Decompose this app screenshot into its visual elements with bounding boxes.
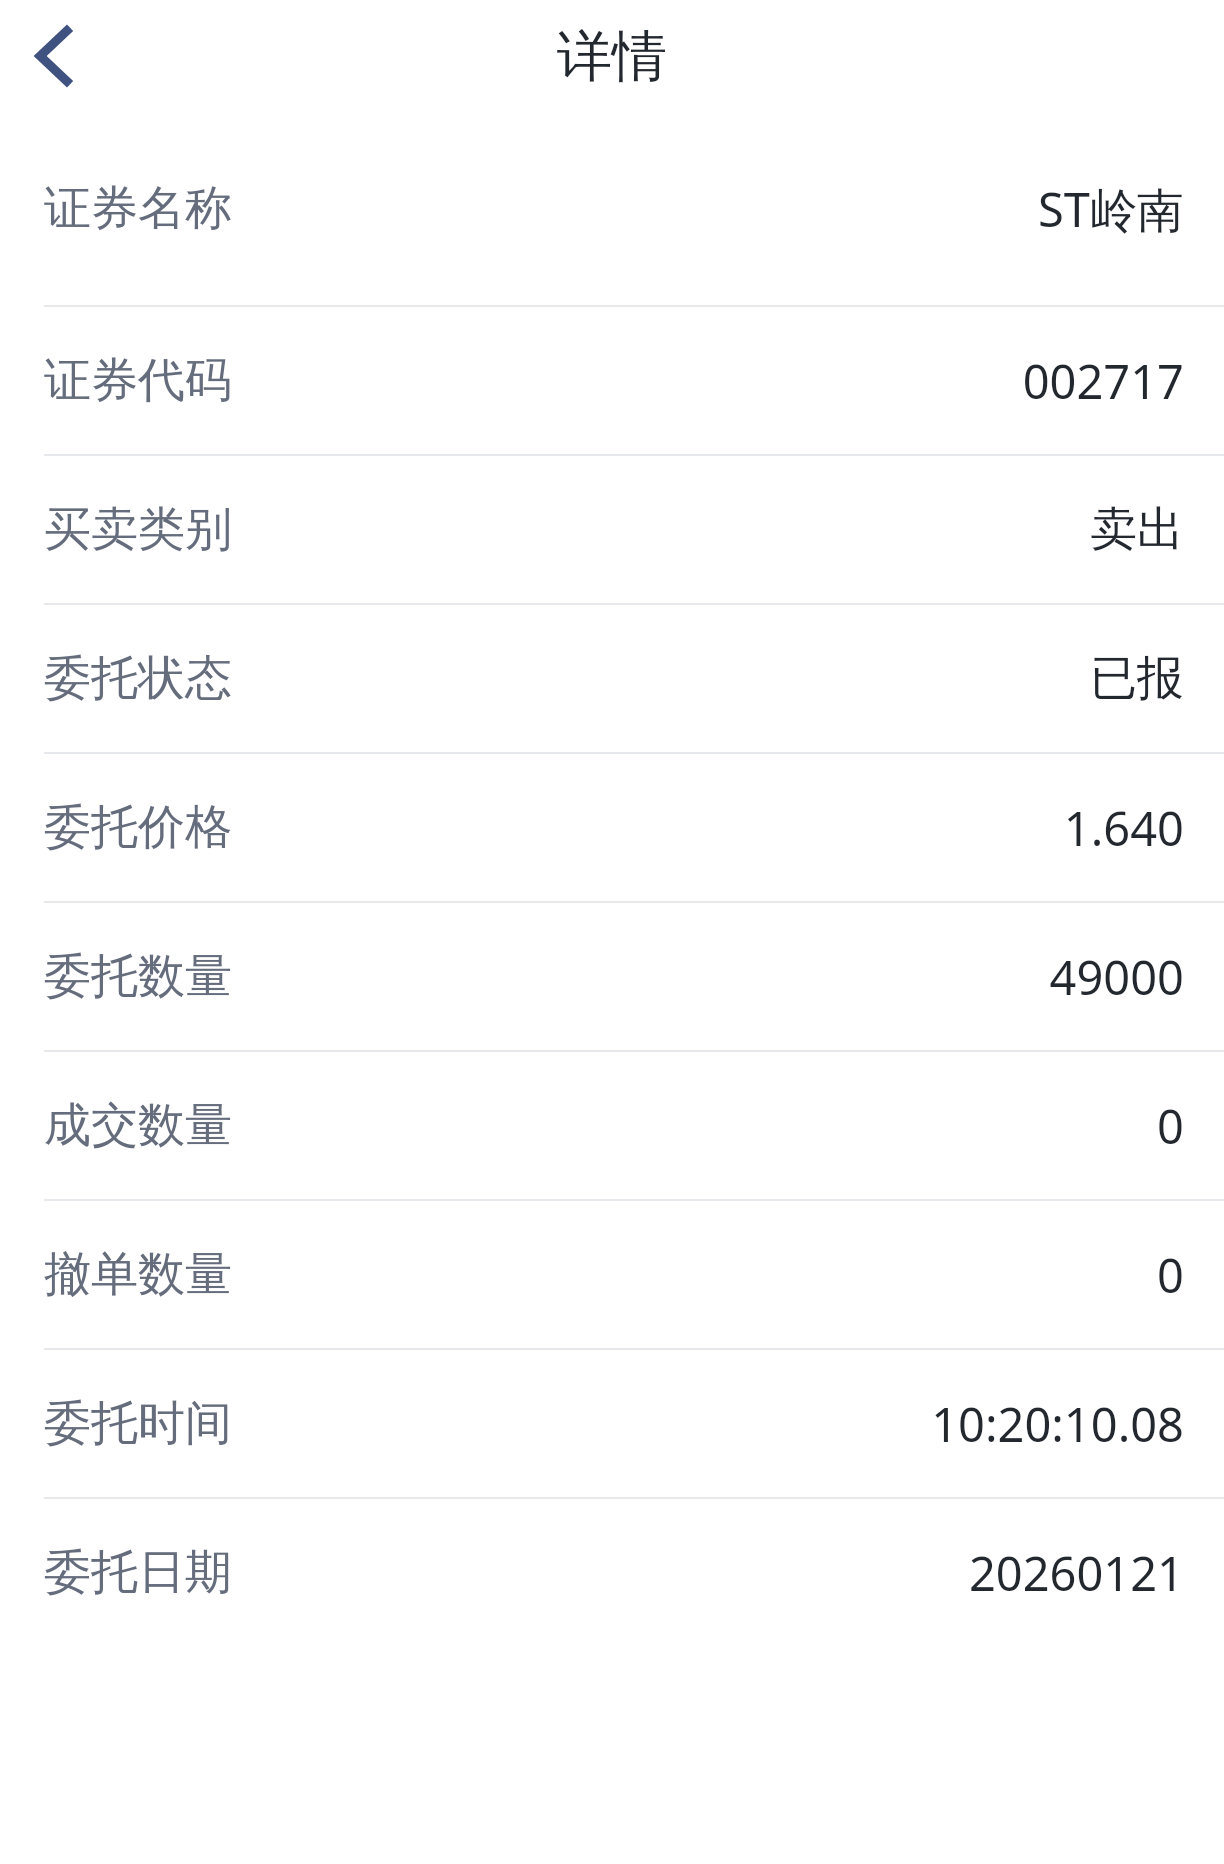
button[interactable]: 买卖类别 — [0, 456, 1224, 603]
button[interactable]: 委托时间 — [0, 1350, 1224, 1497]
staticText: 成交数量 — [44, 1096, 232, 1155]
staticText: 1.640 — [1063, 796, 1184, 860]
staticText: 002717 — [1022, 349, 1184, 413]
staticText: 10:20:10.08 — [931, 1392, 1184, 1456]
button[interactable]: 撤单数量 — [0, 1201, 1224, 1348]
staticText: 49000 — [1049, 945, 1184, 1009]
button[interactable]: 成交数量 — [0, 1052, 1224, 1199]
staticText: 证券名称 — [44, 179, 232, 238]
staticText: 委托数量 — [44, 947, 232, 1006]
staticText: 20260121 — [968, 1541, 1184, 1605]
staticText: 详情 — [557, 22, 667, 91]
staticText: 买卖类别 — [44, 500, 232, 559]
staticText: 委托价格 — [44, 798, 232, 857]
button[interactable]: 证券名称 — [0, 112, 1224, 305]
staticText: 证券代码 — [44, 351, 232, 410]
button[interactable]: 委托状态 — [0, 605, 1224, 752]
staticText: 卖出 — [1090, 500, 1184, 559]
staticText: 委托时间 — [44, 1394, 232, 1453]
button[interactable]: 返回 — [0, 0, 112, 112]
staticText: 已报 — [1090, 649, 1184, 708]
staticText: 委托状态 — [44, 649, 232, 708]
button[interactable]: 委托数量 — [0, 903, 1224, 1050]
button[interactable]: 委托日期 — [0, 1499, 1224, 1646]
staticText: 撤单数量 — [44, 1245, 232, 1304]
staticText: 委托日期 — [44, 1543, 232, 1602]
staticText: 0 — [1157, 1094, 1184, 1158]
button[interactable]: 证券代码 — [0, 307, 1224, 454]
button[interactable]: 委托价格 — [0, 754, 1224, 901]
staticText: 0 — [1157, 1243, 1184, 1307]
staticText: ST岭南 — [1038, 177, 1184, 241]
